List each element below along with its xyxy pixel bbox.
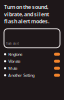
button[interactable]: Mute — [4, 65, 60, 72]
staticText: Another Setting — [8, 73, 34, 78]
staticText: Mute — [8, 66, 17, 71]
button[interactable]: Ringtone — [4, 51, 60, 58]
button[interactable]: Another Setting — [4, 72, 60, 79]
button[interactable]: Vibrate — [4, 58, 60, 65]
staticText: flash alert — [6, 42, 19, 45]
staticText: Vibrate — [8, 59, 20, 64]
staticText: Turn on the sound, vibrate, and silent f… — [4, 3, 49, 25]
staticText: Ringtone — [8, 52, 22, 57]
